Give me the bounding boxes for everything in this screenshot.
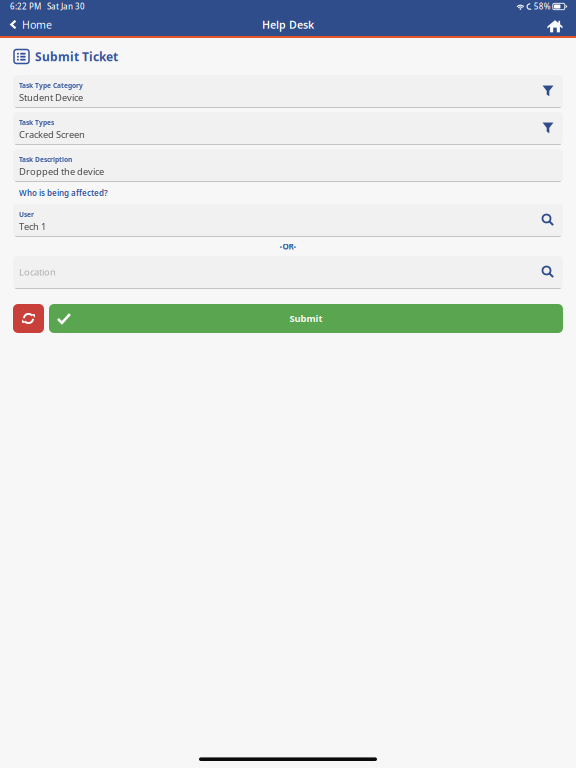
staticText: Submit Ticket — [35, 48, 118, 64]
button[interactable]: Home — [537, 13, 576, 36]
staticText: 6:22 PM Sat Jan 30 — [10, 1, 85, 12]
button[interactable]: Reset — [13, 304, 44, 333]
staticText: Home — [22, 17, 52, 32]
staticText: User — [19, 210, 34, 219]
button[interactable]: Search user — [540, 205, 556, 235]
staticText: Help Desk — [262, 17, 314, 32]
staticText: Who is being affected? — [19, 188, 108, 198]
staticText: -OR- — [279, 241, 296, 252]
staticText: Dropped the device — [19, 165, 104, 178]
staticText: Location — [19, 266, 56, 278]
button[interactable]: Filter task types — [540, 113, 556, 143]
staticText: Submit — [289, 312, 322, 325]
staticText: Task Description — [19, 155, 72, 164]
button[interactable]: Home — [0, 13, 60, 36]
button[interactable]: Filter task type category — [540, 76, 556, 106]
staticText: 58% — [534, 1, 551, 12]
staticText: Task Types — [19, 118, 54, 127]
staticText: Cracked Screen — [19, 128, 85, 141]
staticText: Task Type Category — [19, 81, 83, 90]
button[interactable]: Submit — [49, 304, 563, 333]
button[interactable]: Search location — [540, 257, 556, 287]
staticText: Tech 1 — [19, 220, 46, 233]
staticText: Student Device — [19, 91, 83, 104]
